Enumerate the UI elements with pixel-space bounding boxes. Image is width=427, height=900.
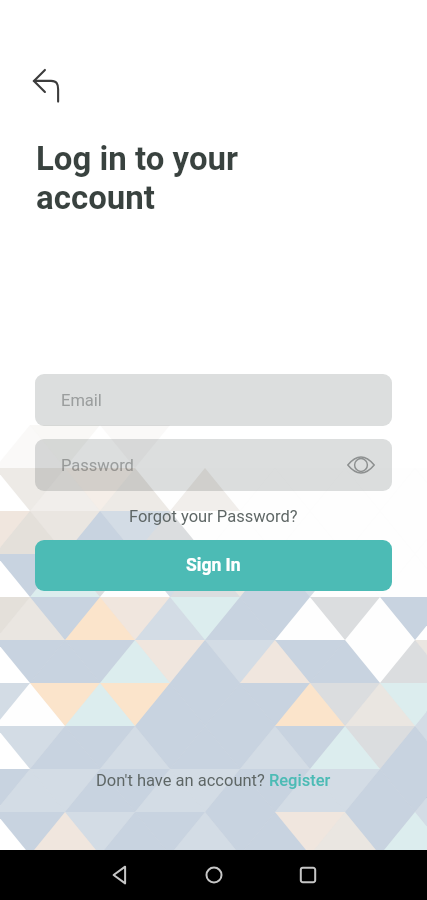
button[interactable]: Forgot your Password?: [119, 503, 308, 530]
button[interactable]: Recent apps: [292, 859, 324, 891]
staticText: Forgot your Password?: [129, 507, 298, 526]
button[interactable]: Password: [35, 439, 392, 491]
button[interactable]: Home: [198, 859, 230, 891]
button[interactable]: Back: [26, 62, 70, 106]
button[interactable]: Email: [35, 374, 392, 426]
staticText: Don't have an account? Register: [96, 771, 331, 790]
staticText: Sign In: [186, 555, 241, 576]
button[interactable]: Sign In: [35, 540, 392, 591]
staticText: Log in to your account: [36, 139, 239, 217]
button[interactable]: Don't have an account? Register: [86, 767, 341, 794]
button[interactable]: Back: [104, 859, 136, 891]
staticText: Password: [61, 456, 134, 475]
button[interactable]: Show password: [346, 450, 376, 480]
staticText: Email: [61, 391, 102, 410]
